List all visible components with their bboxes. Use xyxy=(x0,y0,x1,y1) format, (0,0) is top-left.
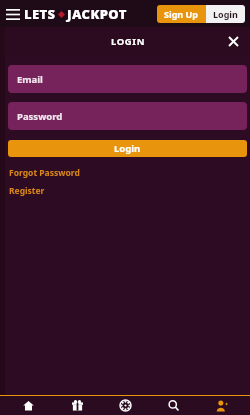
staticText: Sign Up xyxy=(164,8,199,20)
button[interactable]: Email xyxy=(8,65,247,93)
button[interactable]: Forgot Password xyxy=(8,166,81,180)
staticText: Login xyxy=(114,142,141,155)
button[interactable]: Sign Up xyxy=(157,5,206,23)
staticText: LETS xyxy=(24,5,56,23)
button[interactable]: Home xyxy=(8,396,48,415)
button[interactable]: Account xyxy=(202,396,242,415)
staticText: Login xyxy=(213,8,238,20)
staticText: Register xyxy=(9,185,45,197)
button[interactable]: Password xyxy=(8,102,247,130)
staticText: JACKPOT xyxy=(67,5,127,23)
staticText: Forgot Password xyxy=(9,167,80,179)
button[interactable]: Login xyxy=(8,140,247,157)
button[interactable]: Search xyxy=(153,396,193,415)
staticText: Password xyxy=(17,110,63,123)
staticText: Email xyxy=(17,73,43,86)
staticText: LOGIN xyxy=(111,35,145,48)
button[interactable]: Games xyxy=(105,396,145,415)
button[interactable]: Menu xyxy=(2,3,24,25)
button[interactable]: LETS xyxy=(24,5,127,23)
button[interactable]: Login xyxy=(206,5,245,23)
button[interactable]: Promotions xyxy=(57,396,97,415)
button[interactable]: Close xyxy=(221,29,245,53)
button[interactable]: Register xyxy=(8,184,46,198)
